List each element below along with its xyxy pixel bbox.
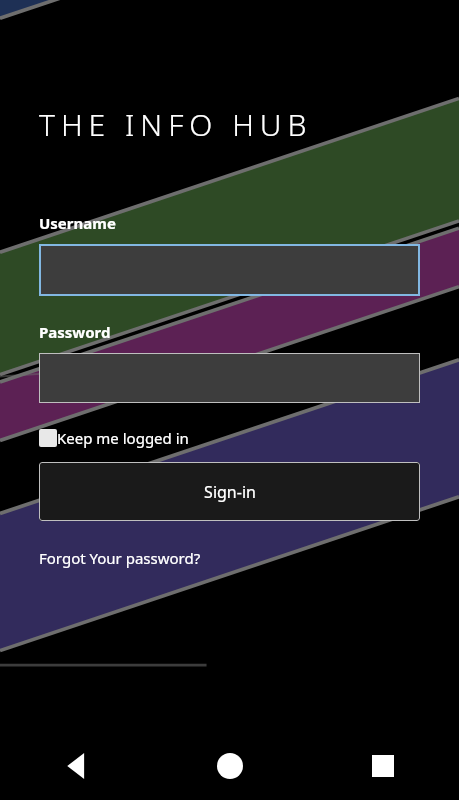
staticText: Keep me logged in — [57, 428, 189, 448]
button[interactable]: Keep me logged in — [39, 428, 189, 448]
button[interactable] — [39, 244, 420, 296]
button[interactable]: Back — [0, 731, 153, 800]
button[interactable] — [39, 353, 420, 403]
staticText: Username — [39, 213, 116, 233]
staticText: Sign-in — [204, 481, 256, 503]
staticText: Forgot Your password? — [39, 548, 201, 568]
button[interactable]: Home — [153, 731, 306, 800]
button[interactable]: Sign-in — [39, 462, 420, 521]
button[interactable]: Forgot Your password? — [39, 548, 201, 568]
staticText: THE INFO HUB — [39, 104, 420, 145]
button[interactable]: Recent apps — [306, 731, 459, 800]
staticText: Password — [39, 322, 111, 342]
